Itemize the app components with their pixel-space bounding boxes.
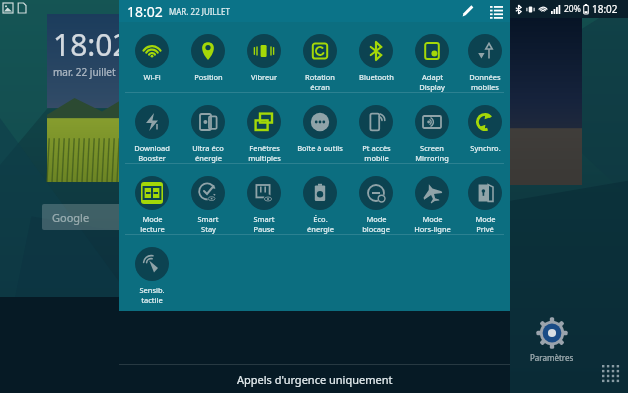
staticText: Mirroring <box>415 153 449 163</box>
staticText: 18:02 <box>592 2 618 16</box>
staticText: Adapt <box>422 72 443 82</box>
staticText: Smart <box>197 214 219 224</box>
button[interactable]: Vibreur <box>236 22 292 82</box>
button[interactable]: Applications <box>600 363 622 385</box>
button[interactable]: Screen <box>404 93 460 163</box>
button[interactable]: Liste <box>486 1 506 21</box>
staticText: Pause <box>253 224 275 234</box>
button[interactable]: 18:02 <box>47 14 157 182</box>
button[interactable]: Éco. <box>292 164 348 234</box>
button[interactable]: Position <box>180 22 236 82</box>
staticText: Wi-Fi <box>143 72 161 82</box>
button[interactable]: Fenêtres <box>236 93 292 163</box>
staticText: 18:02 <box>127 2 163 21</box>
button[interactable]: Mode <box>124 164 180 234</box>
staticText: Stay <box>201 224 216 234</box>
staticText: énergie <box>307 224 334 234</box>
staticText: Mode <box>475 214 496 224</box>
staticText: mobile <box>364 153 389 163</box>
button[interactable]: Wi-Fi <box>124 22 180 82</box>
button[interactable]: Bluetooth <box>348 22 404 82</box>
button[interactable] <box>510 18 582 185</box>
staticText: Appels d'urgence uniquement <box>237 372 393 387</box>
staticText: lecture <box>140 224 165 234</box>
staticText: Bluetooth <box>359 72 394 82</box>
staticText: Mode <box>142 214 163 224</box>
staticText: Paramètres <box>530 352 574 363</box>
staticText: énergie <box>195 153 222 163</box>
staticText: Hors-ligne <box>414 224 451 234</box>
staticText: Pt accès <box>362 143 391 153</box>
button[interactable]: Ultra éco <box>180 93 236 163</box>
staticText: Fenêtres <box>249 143 280 153</box>
staticText: Privé <box>476 224 494 234</box>
button[interactable]: Synchro. <box>460 93 510 153</box>
staticText: Éco. <box>313 214 328 224</box>
staticText: Mode <box>422 214 443 224</box>
staticText: MAR. 22 JUILLET <box>169 6 230 17</box>
staticText: blocage <box>362 224 390 234</box>
button[interactable]: Smart <box>180 164 236 234</box>
button[interactable]: Mode <box>404 164 460 234</box>
button[interactable]: Download <box>124 93 180 163</box>
staticText: tactile <box>141 295 163 305</box>
staticText: Download <box>134 143 170 153</box>
staticText: Position <box>194 72 223 82</box>
staticText: mobiles <box>471 82 499 92</box>
staticText: Smart <box>253 214 275 224</box>
staticText: Display <box>419 82 445 92</box>
staticText: mar. 22 juillet <box>53 65 116 79</box>
staticText: Données <box>469 72 501 82</box>
staticText: Mode <box>366 214 387 224</box>
button[interactable]: Sensib. <box>124 235 180 305</box>
staticText: Google <box>52 210 90 225</box>
staticText: Booster <box>138 153 166 163</box>
staticText: Vibreur <box>251 72 277 82</box>
button[interactable]: Rotation <box>292 22 348 92</box>
button[interactable]: Appels d'urgence uniquement <box>119 366 510 392</box>
button[interactable]: Smart <box>236 164 292 234</box>
button[interactable]: Mode <box>348 164 404 234</box>
staticText: 20% <box>564 3 581 15</box>
staticText: multiples <box>248 153 281 163</box>
staticText: Synchro. <box>470 143 501 153</box>
button[interactable]: Paramètres <box>530 316 574 363</box>
staticText: écran <box>310 82 330 92</box>
button[interactable]: Données <box>460 22 510 92</box>
button[interactable]: Modifier <box>458 1 478 21</box>
button[interactable]: Adapt <box>404 22 460 92</box>
button[interactable]: Google <box>42 204 162 230</box>
staticText: Sensib. <box>139 285 165 295</box>
button[interactable]: Mode <box>460 164 510 234</box>
staticText: Screen <box>420 143 444 153</box>
button[interactable]: Boîte à outils <box>292 93 348 153</box>
staticText: Rotation <box>305 72 335 82</box>
button[interactable]: Pt accès <box>348 93 404 163</box>
staticText: Ultra éco <box>192 143 224 153</box>
staticText: Boîte à outils <box>297 143 343 153</box>
staticText: 18:02 <box>53 24 130 65</box>
